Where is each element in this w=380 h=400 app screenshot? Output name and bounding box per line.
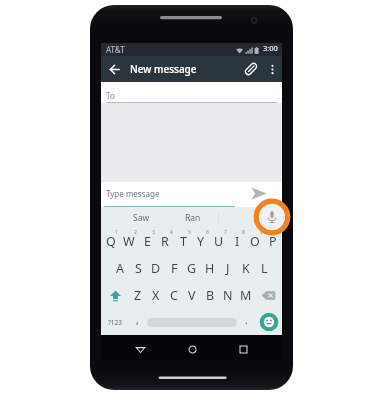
button[interactable]: 0 [264,228,282,255]
staticText: W [123,233,135,250]
staticText: Ran [185,212,201,224]
staticText: 3 [152,229,155,236]
button[interactable]: 4 [156,228,174,255]
button[interactable]: Z [129,282,147,309]
button[interactable]: Home [180,337,204,361]
staticText: Q [106,233,116,250]
button[interactable]: C [165,282,183,309]
button[interactable]: 8 [228,228,246,255]
button[interactable]: Backspace [255,282,282,309]
staticText: To [106,90,115,101]
staticText: , [136,313,139,327]
button[interactable]: S [129,255,147,282]
button[interactable]: 7 [210,228,228,255]
staticText: Saw [133,212,150,224]
staticText: 8 [242,229,245,236]
staticText: P [269,233,277,250]
staticText: 7 [224,229,227,236]
staticText: 2 [134,229,137,236]
button[interactable]: 2 [120,228,138,255]
staticText: E [144,233,151,250]
staticText: O [250,233,260,250]
button[interactable]: ?123 [101,309,128,335]
button[interactable]: Send [250,185,268,203]
staticText: Y [197,233,205,250]
staticText: K [242,260,250,277]
staticText: S [135,260,142,277]
staticText: D [151,260,161,277]
button[interactable]: K [237,255,255,282]
staticText: C [170,287,178,304]
staticText: . [245,313,248,327]
staticText: Type message [106,188,160,199]
button[interactable]: . [237,309,256,335]
button[interactable]: G [183,255,201,282]
button[interactable]: Voice input [254,199,290,235]
staticText: X [152,287,160,304]
button[interactable]: 9 [246,228,264,255]
staticText: 5 [188,229,191,236]
button[interactable]: More options [262,59,282,79]
button[interactable]: N [219,282,237,309]
button[interactable]: 6 [192,228,210,255]
button[interactable]: A [110,255,129,282]
staticText: New message [130,62,197,76]
button[interactable] [218,207,282,228]
staticText: 9 [260,229,263,236]
staticText: L [261,260,268,277]
staticText: V [188,287,196,304]
staticText: T [180,233,187,250]
staticText: R [161,233,169,250]
staticText: 1 [115,229,118,236]
button[interactable]: V [183,282,201,309]
button[interactable]: 3 [138,228,156,255]
button[interactable]: Back [128,337,152,361]
staticText: 0 [278,229,281,236]
button[interactable]: Saw [116,207,167,228]
staticText: Z [134,287,142,304]
button[interactable]: D [147,255,165,282]
button[interactable]: Recents [231,337,255,361]
staticText: A [116,260,124,277]
staticText: H [205,260,215,277]
button[interactable]: 1 [101,228,120,255]
button[interactable]: X [147,282,165,309]
staticText: J [226,260,230,277]
staticText: B [206,287,215,304]
staticText: 4 [170,229,173,236]
button[interactable]: Back [101,56,127,82]
staticText: AT&T [106,44,125,55]
staticText: G [187,260,197,277]
button[interactable]: M [237,282,255,309]
staticText: U [214,233,224,250]
staticText: I [235,233,240,250]
button[interactable]: J [219,255,237,282]
button[interactable]: Attach [240,58,262,80]
button[interactable]: , [128,309,146,335]
button[interactable]: H [201,255,219,282]
staticText: 3:00 [263,43,278,53]
staticText: N [223,287,233,304]
staticText: 6 [206,229,209,236]
staticText: ?123 [108,318,122,327]
button[interactable]: Space [146,309,237,335]
staticText: F [171,260,178,277]
button[interactable]: F [165,255,183,282]
button[interactable]: L [255,255,273,282]
staticText: M [240,287,252,304]
button[interactable]: 5 [174,228,192,255]
button[interactable]: B [201,282,219,309]
button[interactable]: Emoji [256,309,282,335]
button[interactable]: Ran [167,207,218,228]
button[interactable]: Shift [101,282,129,309]
